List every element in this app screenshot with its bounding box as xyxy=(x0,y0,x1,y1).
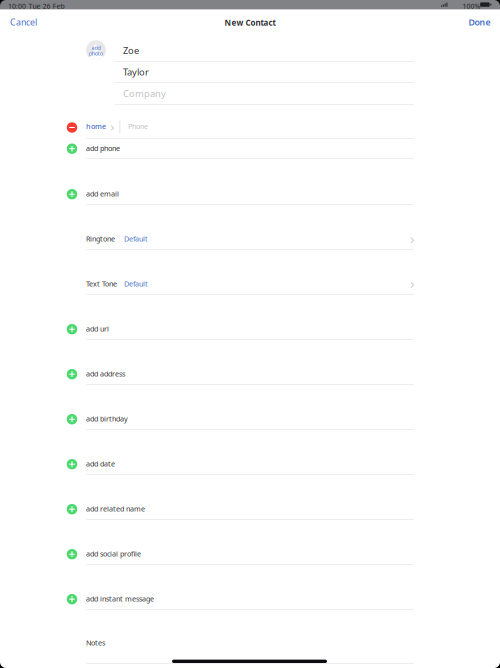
button[interactable]: add birthday xyxy=(0,0,354,18)
staticText: add birthday xyxy=(86,414,128,424)
button[interactable]: home xyxy=(0,0,354,18)
staticText: add instant message xyxy=(86,594,154,604)
staticText: add email xyxy=(86,189,119,199)
staticText: add phone xyxy=(86,143,120,153)
staticText: add xyxy=(91,44,100,51)
button[interactable]: Text Tone xyxy=(0,0,354,18)
button[interactable]: Company xyxy=(0,0,299,18)
staticText: Tue 26 Feb xyxy=(28,1,64,11)
staticText: 100% xyxy=(462,1,480,11)
staticText: 10:00 xyxy=(8,1,26,11)
button[interactable]: Done xyxy=(0,0,30,22)
button[interactable]: add date xyxy=(0,0,354,18)
staticText: Ringtone xyxy=(86,234,115,244)
staticText: add related name xyxy=(86,504,145,514)
staticText: add address xyxy=(86,369,125,379)
staticText: Done xyxy=(468,16,490,28)
staticText: Phone xyxy=(128,121,148,131)
staticText: New Contact xyxy=(224,17,275,28)
button[interactable]: Notes xyxy=(0,0,354,18)
button[interactable]: add related name xyxy=(0,0,354,18)
staticText: Default xyxy=(124,234,148,244)
button[interactable]: add instant message xyxy=(0,0,354,18)
button[interactable]: add phone xyxy=(0,0,354,18)
staticText: home xyxy=(86,121,106,131)
button[interactable]: Cancel xyxy=(0,0,40,22)
staticText: Company xyxy=(123,87,166,100)
button[interactable]: Add photo xyxy=(0,0,20,20)
staticText: Taylor xyxy=(123,65,149,78)
staticText: add date xyxy=(86,459,115,469)
staticText: Zoe xyxy=(123,44,139,57)
staticText: photo xyxy=(89,50,103,57)
button[interactable]: Zoe xyxy=(0,0,299,18)
button[interactable]: Taylor xyxy=(0,0,299,18)
staticText: Notes xyxy=(86,638,105,648)
button[interactable]: Ringtone xyxy=(0,0,354,18)
staticText: Cancel xyxy=(10,16,37,28)
staticText: Text Tone xyxy=(86,279,117,289)
button[interactable]: add address xyxy=(0,0,354,18)
staticText: add social profile xyxy=(86,549,141,559)
button[interactable]: add url xyxy=(0,0,354,18)
button[interactable]: add email xyxy=(0,0,354,18)
staticText: add url xyxy=(86,324,109,334)
button[interactable]: add social profile xyxy=(0,0,354,18)
staticText: Default xyxy=(124,279,148,289)
